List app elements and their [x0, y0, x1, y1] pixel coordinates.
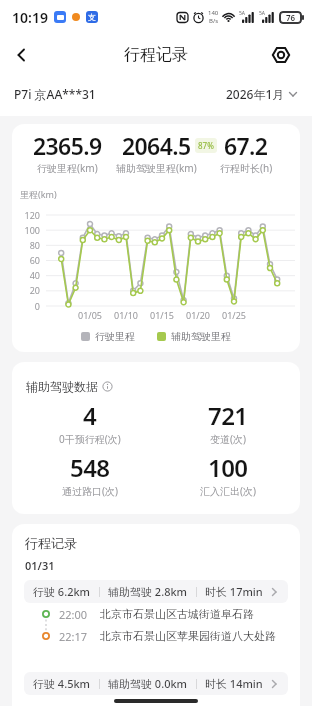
staticText: 行程记录 [25, 535, 77, 551]
staticText: 5A [239, 10, 246, 17]
staticText: 40 [14, 269, 40, 281]
staticText: 辅助驾驶数据 [26, 379, 98, 394]
staticText: 01/25 [218, 309, 250, 321]
staticText: 10:19 [12, 8, 48, 27]
staticText: 2064.5 [122, 130, 191, 161]
staticText: 辅助驾驶里程(km) [116, 161, 197, 175]
staticText: 通过路口(次) [62, 484, 118, 498]
staticText: 20 [14, 284, 40, 296]
staticText: P7i 京AA***31 [14, 86, 96, 102]
staticText: 汇入汇出(次) [200, 484, 256, 498]
staticText: 100 [208, 451, 248, 484]
button[interactable]: 行驶 4.5km [24, 672, 288, 695]
staticText: 22:17 [59, 629, 88, 644]
staticText: 4 [83, 399, 97, 432]
staticText: 行驶 4.5km [33, 676, 91, 691]
button[interactable] [270, 44, 292, 66]
staticText: 辅助驾驶里程 [171, 330, 231, 343]
staticText: 行驶里程(km) [37, 161, 98, 175]
staticText: 548 [70, 451, 110, 484]
button[interactable]: 2026年1月 [226, 86, 298, 102]
staticText: 721 [208, 399, 248, 432]
staticText: 01/05 [74, 309, 106, 321]
staticText: 行驶里程 [95, 330, 135, 343]
staticText: 0 [14, 300, 40, 312]
staticText: 2026年1月 [226, 86, 285, 102]
staticText: 0干预行程(次) [59, 432, 121, 446]
staticText: 01/15 [146, 309, 178, 321]
staticText: 里程(km) [20, 188, 57, 200]
staticText: 北京市石景山区苹果园街道八大处路 [100, 629, 276, 643]
staticText: 时长 17min [205, 584, 263, 599]
staticText: 时长 14min [205, 676, 263, 691]
button[interactable]: 行驶 6.2km [24, 580, 288, 603]
staticText: 60 [14, 254, 40, 266]
button[interactable] [8, 41, 36, 69]
staticText: 01/20 [182, 309, 214, 321]
staticText: 行程时长(h) [220, 161, 273, 175]
staticText: 2365.9 [33, 130, 102, 161]
staticText: 76 [286, 12, 296, 23]
staticText: 变道(次) [210, 432, 246, 446]
staticText: 87% [198, 140, 214, 151]
staticText: 67.2 [224, 130, 268, 161]
staticText: 辅助驾驶 2.8km [108, 584, 188, 599]
staticText: 01/10 [110, 309, 142, 321]
staticText: 5A [259, 10, 266, 17]
staticText: 100 [14, 224, 40, 236]
staticText: 辅助驾驶 0.0km [108, 676, 188, 691]
staticText: 22:00 [59, 607, 88, 622]
staticText: 行程记录 [124, 45, 188, 65]
staticText: 行驶 6.2km [33, 584, 91, 599]
staticText: 80 [14, 239, 40, 251]
staticText: B/s [209, 17, 219, 25]
staticText: 120 [14, 209, 40, 221]
staticText: 支 [88, 12, 96, 22]
staticText: 140 [208, 9, 219, 17]
staticText: 01/31 [25, 558, 55, 573]
staticText: 北京市石景山区古城街道阜石路 [100, 607, 254, 621]
